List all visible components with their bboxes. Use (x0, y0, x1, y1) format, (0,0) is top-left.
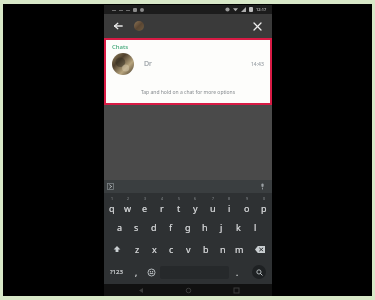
staticText: s (134, 221, 139, 233)
staticText: 1 (111, 196, 114, 201)
staticText: Dr (144, 59, 153, 69)
staticText: ?123 (110, 268, 123, 276)
button[interactable]: Shift (104, 238, 129, 260)
button[interactable]: Recents (225, 284, 247, 296)
button[interactable]: 2 (120, 193, 136, 216)
button[interactable]: 9 (238, 193, 255, 216)
button[interactable]: Dr (106, 51, 270, 77)
staticText: i (228, 202, 231, 214)
staticText: 0 (263, 196, 266, 201)
button[interactable]: b (197, 238, 214, 260)
staticText: g (185, 221, 191, 233)
button[interactable]: 1 (104, 193, 120, 216)
staticText: o (244, 202, 250, 214)
staticText: , (135, 267, 138, 278)
staticText: a (117, 221, 123, 233)
button[interactable]: c (163, 238, 180, 260)
staticText: q (109, 202, 115, 214)
staticText: l (254, 221, 257, 233)
staticText: y (193, 202, 198, 214)
staticText: t (177, 202, 181, 214)
button[interactable]: a (112, 216, 128, 238)
staticText: w (124, 202, 132, 214)
button[interactable]: 6 (187, 193, 204, 216)
staticText: r (160, 202, 164, 214)
button[interactable]: n (214, 238, 231, 260)
button[interactable]: Voice input (257, 181, 268, 192)
staticText: c (169, 243, 174, 255)
button[interactable]: g (179, 216, 196, 238)
button[interactable]: 3 (136, 193, 153, 216)
staticText: 14:43 (251, 61, 264, 68)
button[interactable]: Emoji (144, 260, 159, 284)
button[interactable]: k (230, 216, 247, 238)
staticText: n (220, 243, 226, 255)
staticText: 6 (194, 196, 197, 201)
button[interactable]: m (231, 238, 248, 260)
staticText: 5 (178, 196, 181, 201)
staticText: j (220, 221, 223, 233)
staticText: d (151, 221, 157, 233)
staticText: e (142, 202, 148, 214)
button[interactable]: Search (245, 260, 272, 284)
staticText: x (152, 243, 157, 255)
staticText: p (261, 202, 267, 214)
staticText: Tap and hold on a chat for more options (106, 89, 270, 96)
button[interactable]: v (180, 238, 197, 260)
button[interactable]: x (146, 238, 163, 260)
staticText: 7 (212, 196, 215, 201)
button[interactable]: l (247, 216, 264, 238)
button[interactable]: ?123 (104, 260, 129, 284)
button[interactable]: z (129, 238, 146, 260)
button[interactable]: f (162, 216, 179, 238)
button[interactable]: Home (177, 284, 199, 296)
button[interactable]: 8 (221, 193, 238, 216)
button[interactable]: 4 (153, 193, 170, 216)
staticText: 12:17 (256, 7, 267, 12)
staticText: . (236, 267, 239, 278)
button[interactable]: Back (108, 16, 128, 36)
button[interactable]: 7 (204, 193, 221, 216)
button[interactable]: d (145, 216, 162, 238)
button[interactable]: Chats (106, 40, 270, 103)
staticText: u (210, 202, 216, 214)
staticText: b (203, 243, 209, 255)
button[interactable]: Close (247, 16, 267, 36)
button[interactable]: Profile (130, 17, 148, 35)
staticText: z (135, 243, 140, 255)
button[interactable]: 0 (255, 193, 272, 216)
staticText: h (202, 221, 208, 233)
staticText: 9 (246, 196, 249, 201)
staticText: 8 (228, 196, 231, 201)
staticText: 4 (161, 196, 164, 201)
staticText: 2 (127, 196, 130, 201)
staticText: m (235, 243, 244, 255)
staticText: 3 (144, 196, 147, 201)
staticText: f (169, 221, 173, 233)
button[interactable]: s (128, 216, 145, 238)
button[interactable]: 5 (170, 193, 187, 216)
button[interactable]: Back (130, 284, 152, 296)
button[interactable]: More suggestions (105, 181, 116, 192)
button[interactable]: . (230, 260, 245, 284)
staticText: Chats (112, 43, 129, 51)
button[interactable]: j (213, 216, 230, 238)
button[interactable]: , (129, 260, 144, 284)
button[interactable]: h (196, 216, 213, 238)
staticText: k (236, 221, 241, 233)
button[interactable]: Backspace (248, 238, 272, 260)
staticText: v (186, 243, 191, 255)
